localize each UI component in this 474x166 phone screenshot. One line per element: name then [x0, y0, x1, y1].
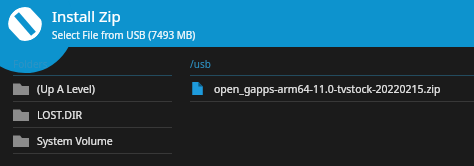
- button[interactable]: (Up A Level): [13, 76, 172, 102]
- button[interactable]: LOST.DIR: [13, 102, 172, 128]
- staticText: LOST.DIR: [37, 108, 83, 122]
- staticText: Install Zip: [52, 6, 121, 26]
- staticText: Select File from USB (7493 MB): [52, 28, 196, 42]
- staticText: Folders: [13, 57, 48, 71]
- button[interactable]: System Volume Information: [13, 128, 172, 154]
- button[interactable]: TWRP recovery home: [5, 4, 45, 44]
- button[interactable]: open_gapps-arm64-11.0-tvstock-20220215.z…: [190, 76, 474, 102]
- staticText: (Up A Level): [37, 82, 95, 96]
- staticText: System Volume Information: [37, 134, 172, 148]
- staticText: /usb: [190, 57, 211, 71]
- staticText: open_gapps-arm64-11.0-tvstock-20220215.z…: [214, 82, 441, 96]
